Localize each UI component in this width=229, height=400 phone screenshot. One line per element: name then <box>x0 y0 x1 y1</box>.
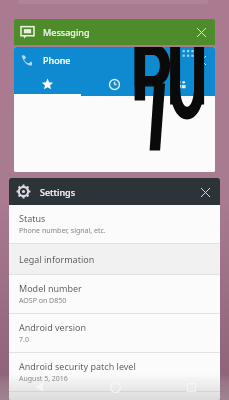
staticText: Android version <box>19 321 87 333</box>
button[interactable]: Model number <box>9 275 220 313</box>
staticText: Model number <box>19 282 82 294</box>
staticText: Settings <box>40 186 76 198</box>
button[interactable]: Status <box>9 205 220 243</box>
button[interactable]: Dismiss Phone <box>192 51 210 69</box>
button[interactable]: Android security patch level <box>9 353 220 391</box>
staticText: Messaging <box>43 26 90 38</box>
staticText: 7.0 <box>19 335 29 345</box>
staticText: Android security patch level <box>19 360 136 372</box>
button[interactable]: Favorites <box>14 72 81 96</box>
staticText: August 5, 2016 <box>19 374 68 384</box>
button[interactable]: Messaging <box>14 19 215 45</box>
staticText: Status <box>19 212 46 224</box>
button[interactable]: Recent apps <box>153 374 229 400</box>
button[interactable]: Call history <box>81 72 148 96</box>
button[interactable]: Back <box>0 374 77 400</box>
button[interactable]: Dismiss Messaging <box>192 23 210 41</box>
button[interactable]: Settings <box>9 178 220 400</box>
staticText: Legal information <box>19 253 95 265</box>
button[interactable]: Dismiss Settings <box>196 183 214 201</box>
button[interactable]: Home <box>77 374 153 400</box>
button[interactable]: Legal information <box>9 244 220 274</box>
staticText: AOSP on D850 <box>19 296 67 306</box>
staticText: Phone number, signal, etc. <box>19 226 106 236</box>
staticText: Phone <box>43 54 71 66</box>
button[interactable]: Android version <box>9 314 220 352</box>
button[interactable]: Phone <box>14 47 215 172</box>
button[interactable]: Contacts <box>148 72 215 96</box>
